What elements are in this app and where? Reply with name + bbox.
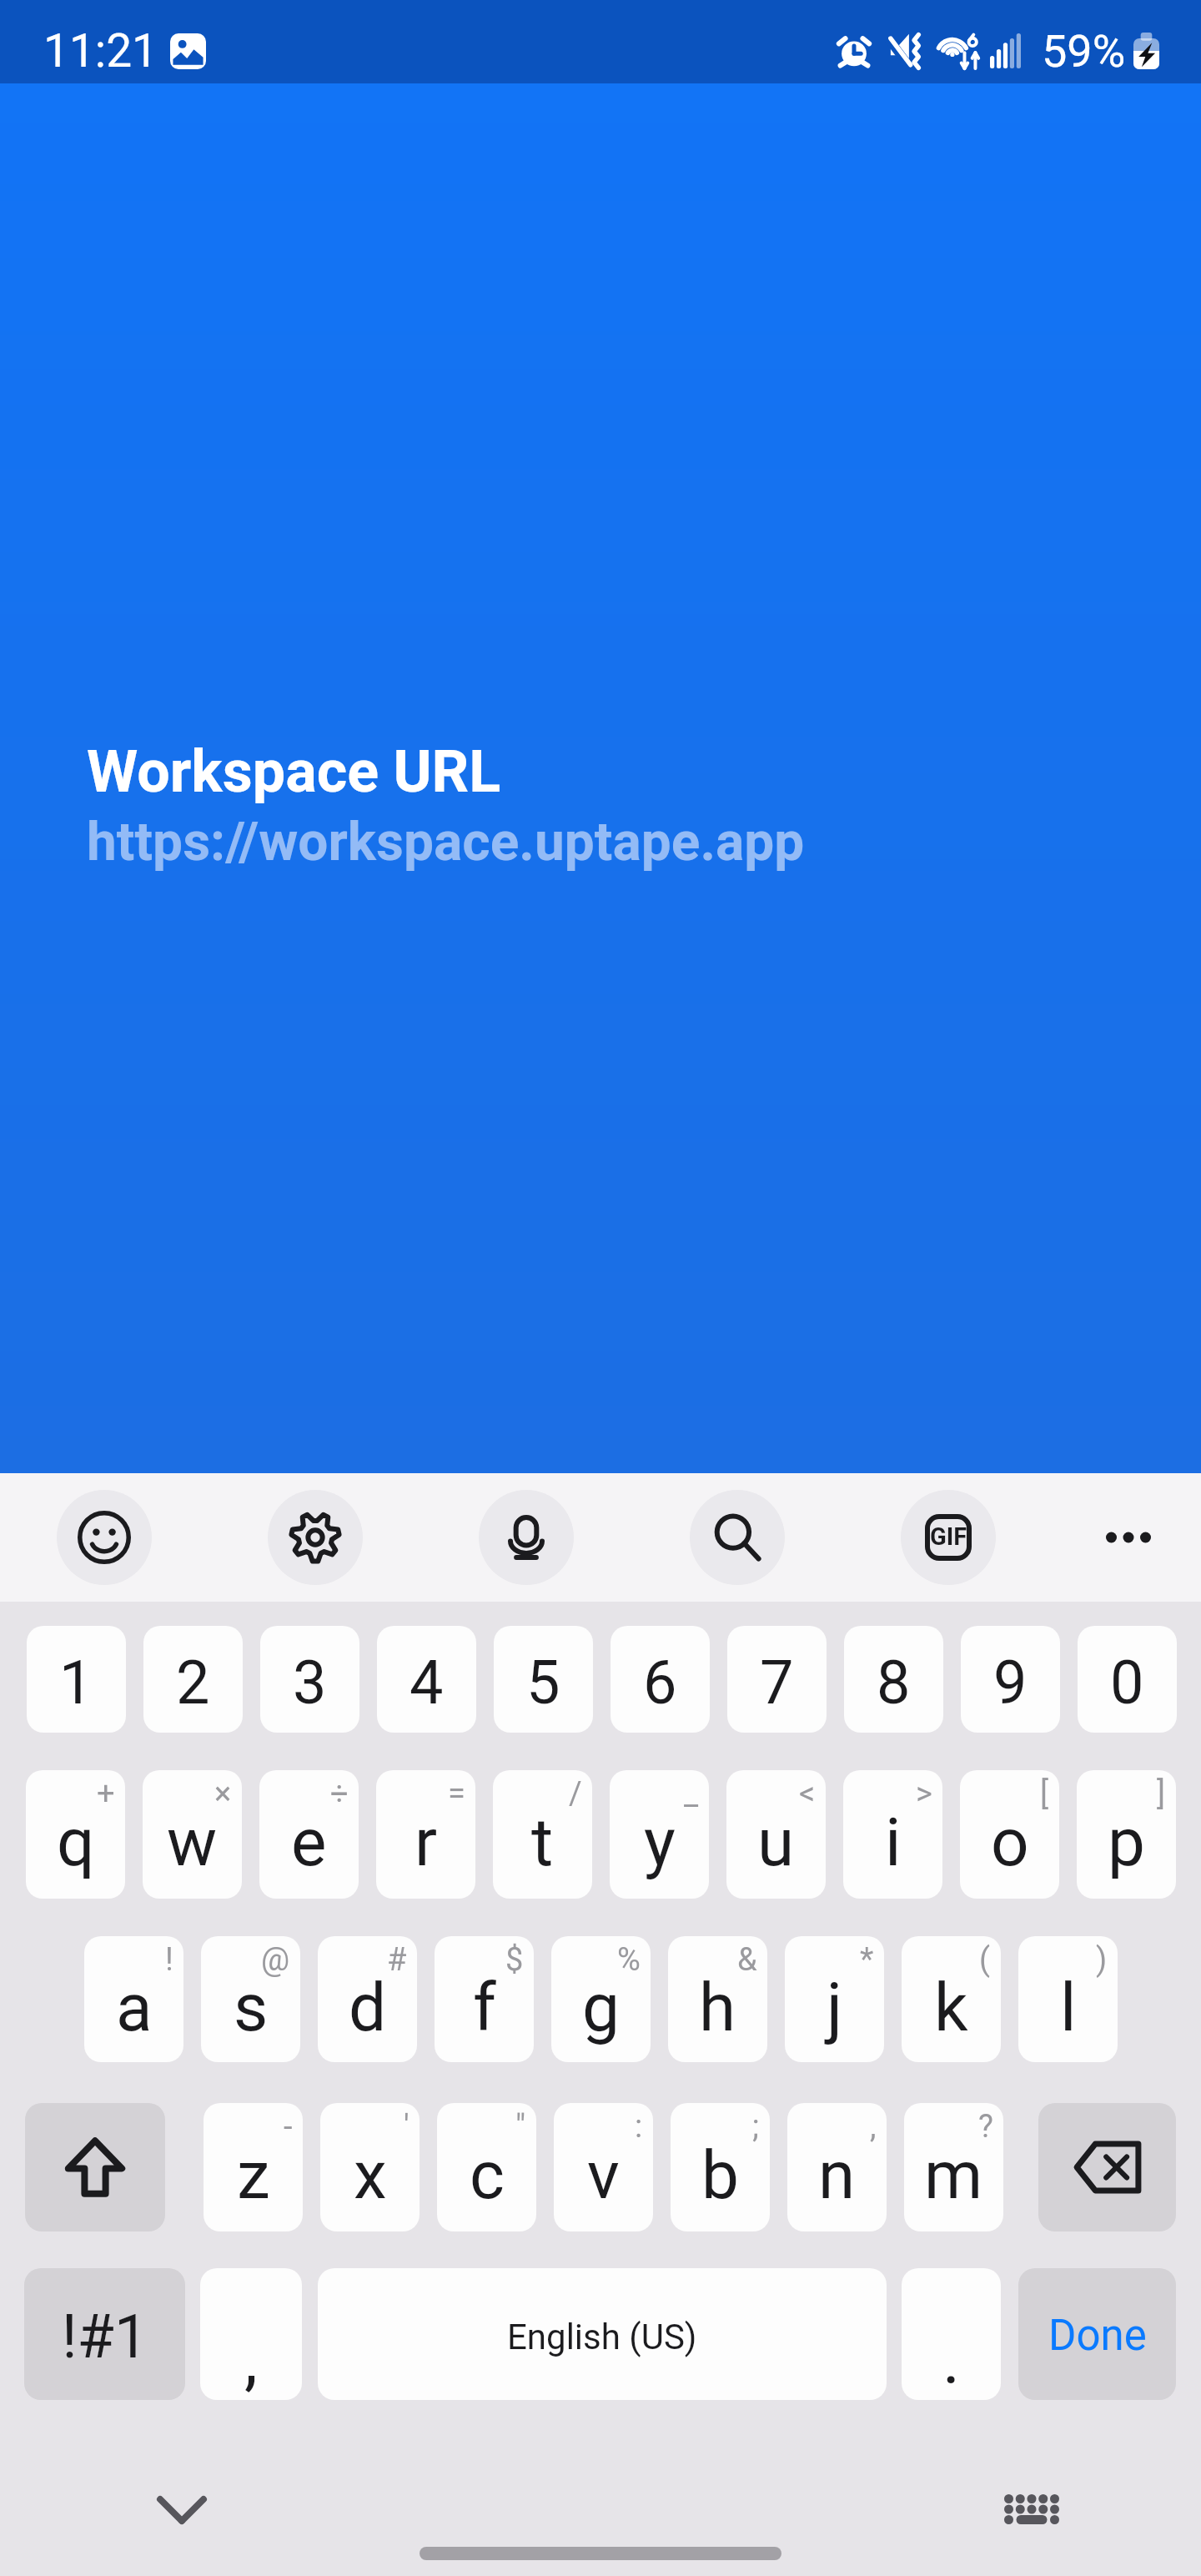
staticText: ?	[978, 2108, 993, 2146]
button[interactable]: ,	[787, 2103, 887, 2231]
staticText: ,	[244, 2322, 258, 2400]
button[interactable]: Change keyboard	[988, 2466, 1075, 2553]
staticText: w	[167, 1804, 218, 1882]
button[interactable]: !	[84, 1936, 183, 2062]
staticText: -	[284, 2108, 293, 2146]
staticText: "	[515, 2108, 526, 2146]
staticText: !	[165, 1941, 173, 1979]
staticText: c	[470, 2136, 505, 2215]
staticText: g	[582, 1969, 620, 2047]
button[interactable]: ]	[1077, 1770, 1176, 1899]
staticText: m	[924, 2136, 983, 2215]
staticText: n	[818, 2136, 856, 2215]
button[interactable]: ÷	[259, 1770, 359, 1899]
staticText: #	[387, 1941, 407, 1979]
button[interactable]: [	[960, 1770, 1059, 1899]
staticText: k	[934, 1969, 968, 2047]
button[interactable]: 1	[27, 1626, 126, 1733]
button[interactable]: .	[902, 2268, 1001, 2400]
button[interactable]: 8	[844, 1626, 943, 1733]
button[interactable]: <	[726, 1770, 826, 1899]
staticText: t	[531, 1804, 554, 1882]
staticText: https://workspace.uptape.app	[87, 811, 805, 873]
button[interactable]: >	[843, 1770, 942, 1899]
staticText: @	[261, 1941, 290, 1979]
staticText: 3	[293, 1648, 327, 1718]
staticText: ÷	[330, 1775, 349, 1813]
button[interactable]: ×	[143, 1770, 242, 1899]
staticText: ×	[214, 1775, 232, 1813]
staticText: a	[116, 1969, 153, 2047]
button[interactable]: Done	[1018, 2268, 1176, 2400]
staticText: GIF	[930, 1522, 967, 1551]
button[interactable]: &	[668, 1936, 767, 2062]
staticText: 9	[993, 1648, 1028, 1718]
button[interactable]: !#1	[24, 2268, 185, 2400]
button[interactable]: English (US)	[318, 2268, 887, 2400]
staticText: 59%	[1042, 25, 1126, 78]
button[interactable]: ,	[200, 2268, 302, 2400]
button[interactable]: 0	[1078, 1626, 1177, 1733]
button[interactable]: "	[437, 2103, 536, 2231]
button[interactable]: Voice input	[479, 1490, 574, 1585]
button[interactable]: 9	[961, 1626, 1060, 1733]
button[interactable]: -	[204, 2103, 303, 2231]
button[interactable]: Keyboard settings	[268, 1490, 363, 1585]
button[interactable]: 4	[377, 1626, 476, 1733]
staticText: ,	[870, 2108, 877, 2146]
staticText: >	[916, 1775, 932, 1813]
button[interactable]: _	[610, 1770, 709, 1899]
button[interactable]: 5	[494, 1626, 593, 1733]
button[interactable]: More options	[1081, 1490, 1176, 1585]
staticText: z	[237, 2136, 270, 2215]
staticText: 1	[59, 1648, 93, 1718]
button[interactable]: Search	[690, 1490, 785, 1585]
staticText: u	[757, 1804, 795, 1882]
button[interactable]: 6	[611, 1626, 710, 1733]
button[interactable]: 7	[727, 1626, 827, 1733]
button[interactable]: Shift	[25, 2103, 165, 2231]
staticText: s	[234, 1969, 269, 2047]
staticText: j	[827, 1969, 843, 2047]
staticText: e	[291, 1804, 327, 1882]
staticText: )	[1096, 1941, 1108, 1979]
button[interactable]: GIF	[901, 1490, 996, 1585]
button[interactable]: ;	[671, 2103, 770, 2231]
button[interactable]: +	[26, 1770, 125, 1899]
button[interactable]: *	[785, 1936, 884, 2062]
button[interactable]: '	[320, 2103, 420, 2231]
staticText: !#1	[62, 2302, 148, 2372]
button[interactable]: $	[435, 1936, 534, 2062]
button[interactable]: 2	[143, 1626, 243, 1733]
staticText: Workspace URL	[87, 737, 501, 806]
staticText: 11:21	[43, 24, 158, 78]
staticText: Done	[1048, 2311, 1147, 2361]
staticText: 6	[643, 1648, 677, 1718]
button[interactable]: (	[902, 1936, 1001, 2062]
staticText: h	[699, 1969, 736, 2047]
button[interactable]: 3	[260, 1626, 359, 1733]
button[interactable]: ?	[904, 2103, 1003, 2231]
staticText: %	[617, 1941, 641, 1979]
staticText: &	[737, 1941, 757, 1979]
staticText: l	[1060, 1969, 1077, 2047]
staticText: <	[799, 1775, 816, 1813]
button[interactable]: Emoji	[57, 1490, 152, 1585]
button[interactable]: /	[493, 1770, 592, 1899]
button[interactable]: #	[318, 1936, 417, 2062]
staticText: =	[448, 1775, 465, 1813]
staticText: *	[860, 1941, 874, 1979]
staticText: b	[701, 2136, 739, 2215]
button[interactable]: @	[201, 1936, 300, 2062]
staticText: $	[505, 1941, 524, 1979]
button[interactable]: Hide keyboard	[138, 2467, 225, 2553]
staticText: v	[587, 2136, 620, 2215]
button[interactable]: %	[551, 1936, 651, 2062]
staticText: :	[635, 2108, 643, 2146]
staticText: d	[349, 1969, 387, 2047]
button[interactable]: :	[554, 2103, 653, 2231]
button[interactable]: Backspace	[1038, 2103, 1176, 2231]
button[interactable]: )	[1018, 1936, 1118, 2062]
staticText: p	[1108, 1804, 1145, 1882]
button[interactable]: =	[376, 1770, 475, 1899]
